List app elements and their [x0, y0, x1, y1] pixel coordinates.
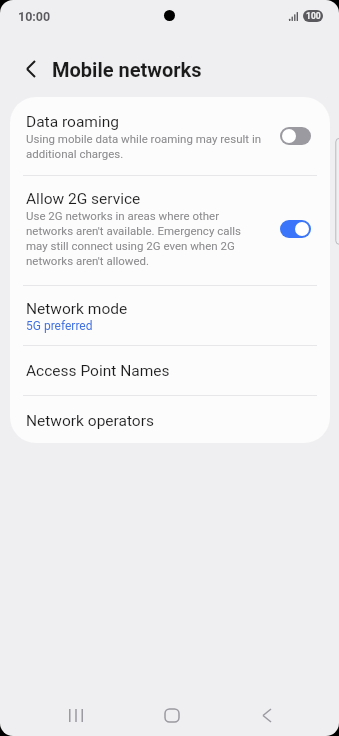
button[interactable]: Navigate up [9, 47, 53, 91]
staticText: Data roaming [26, 111, 119, 131]
button[interactable]: Home [148, 695, 196, 736]
button[interactable]: Back [243, 695, 291, 736]
button[interactable]: Recent apps [52, 695, 100, 736]
button[interactable]: Data roaming [10, 97, 330, 175]
button[interactable]: On [280, 220, 311, 238]
button[interactable]: Off [280, 127, 311, 145]
button[interactable]: Network operators [10, 396, 330, 443]
staticText: Use 2G networks in areas where other net… [26, 208, 263, 268]
staticText: Access Point Names [26, 360, 170, 380]
staticText: 10:00 [18, 9, 51, 24]
staticText: 5G preferred [26, 318, 93, 333]
staticText: 100 [306, 11, 321, 21]
staticText: Allow 2G service [26, 188, 141, 208]
button[interactable]: Access Point Names [10, 346, 330, 395]
staticText: Network operators [26, 410, 154, 430]
staticText: Mobile networks [52, 58, 202, 81]
button[interactable]: Allow 2G service [10, 176, 330, 285]
staticText: Using mobile data while roaming may resu… [26, 131, 263, 161]
button[interactable]: Network mode [10, 286, 330, 345]
staticText: Network mode [26, 298, 128, 318]
